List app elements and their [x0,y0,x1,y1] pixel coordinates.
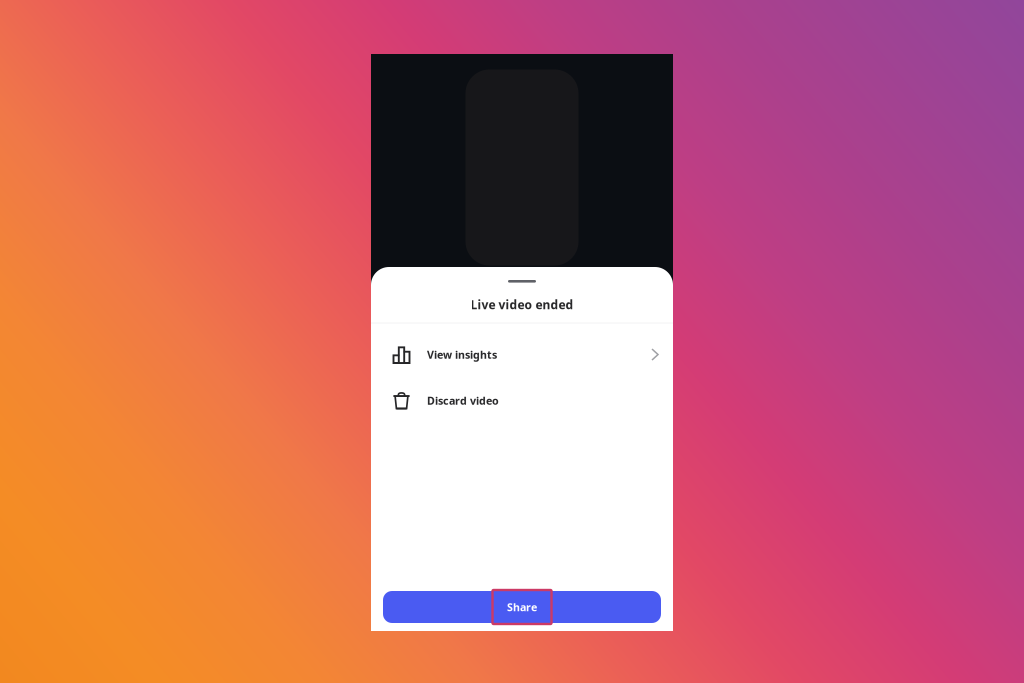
staticText: Discard video [427,393,499,408]
button[interactable]: View insights [371,331,673,377]
staticText: Share [507,600,537,614]
button[interactable]: Discard video [371,377,673,423]
staticText: Live video ended [470,297,573,312]
staticText: View insights [427,347,497,362]
button[interactable]: Share [383,591,661,623]
